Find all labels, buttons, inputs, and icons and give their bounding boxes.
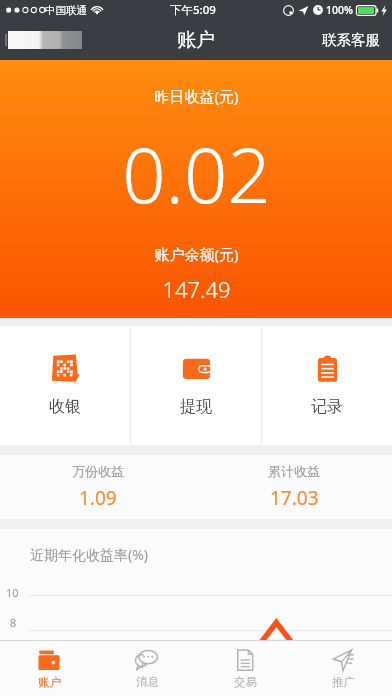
staticText: 账户 [38, 675, 61, 689]
button[interactable]: 记录 [262, 326, 392, 445]
staticText: 提现 [180, 397, 212, 417]
button[interactable]: 联系客服 [310, 23, 392, 57]
staticText: 近期年化收益率(%) [30, 545, 149, 564]
staticText: 中国联通 [45, 4, 87, 17]
staticText: 累计收益 [268, 463, 320, 479]
staticText: 万份收益 [72, 463, 124, 479]
staticText: 账户 [177, 28, 215, 52]
staticText: 交易 [234, 675, 257, 689]
button[interactable]: 提现 [131, 326, 261, 445]
staticText: 收银 [49, 397, 81, 417]
button[interactable]: 账户 [0, 641, 98, 696]
staticText: 0.02 [122, 122, 271, 226]
staticText: 联系客服 [322, 31, 380, 49]
staticText: 147.49 [162, 274, 231, 304]
staticText: 10 [6, 585, 19, 600]
button[interactable]: 交易 [196, 641, 294, 696]
button[interactable]: 推广 [294, 641, 392, 696]
staticText: 消息 [136, 675, 159, 689]
staticText: 8 [10, 615, 17, 630]
staticText: 下午5:09 [170, 2, 216, 18]
staticText: 昨日收益(元) [154, 86, 239, 106]
button[interactable]: 万份收益 [0, 455, 196, 519]
staticText: 记录 [311, 397, 343, 417]
button[interactable]: 消息 [98, 641, 196, 696]
staticText: 1.09 [79, 485, 117, 511]
staticText: 账户余额(元) [154, 244, 239, 264]
staticText: 推广 [332, 675, 355, 689]
button[interactable]: 累计收益 [196, 455, 392, 519]
staticText: 17.03 [270, 485, 319, 511]
button[interactable]: 收银 [0, 326, 130, 445]
staticText: 100% [326, 3, 353, 17]
